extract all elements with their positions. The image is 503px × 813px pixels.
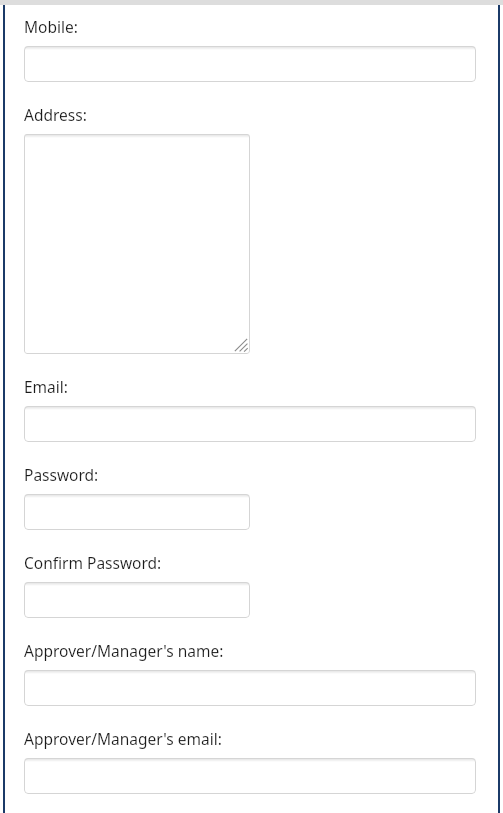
staticText: Approver/Manager's email: <box>24 728 222 749</box>
button[interactable]: Address <box>24 134 250 354</box>
button[interactable]: Mobile <box>24 46 476 82</box>
button[interactable]: Confirm Password <box>24 582 250 618</box>
button[interactable]: Approver or Manager name <box>24 670 476 706</box>
staticText: Confirm Password: <box>24 552 162 573</box>
staticText: Mobile: <box>24 16 78 37</box>
button[interactable]: Email <box>24 406 476 442</box>
button[interactable]: Password <box>24 494 250 530</box>
staticText: Email: <box>24 376 68 397</box>
staticText: Approver/Manager's name: <box>24 640 224 661</box>
button[interactable]: Approver or Manager email <box>24 758 476 794</box>
staticText: Password: <box>24 464 99 485</box>
staticText: Address: <box>24 104 87 125</box>
